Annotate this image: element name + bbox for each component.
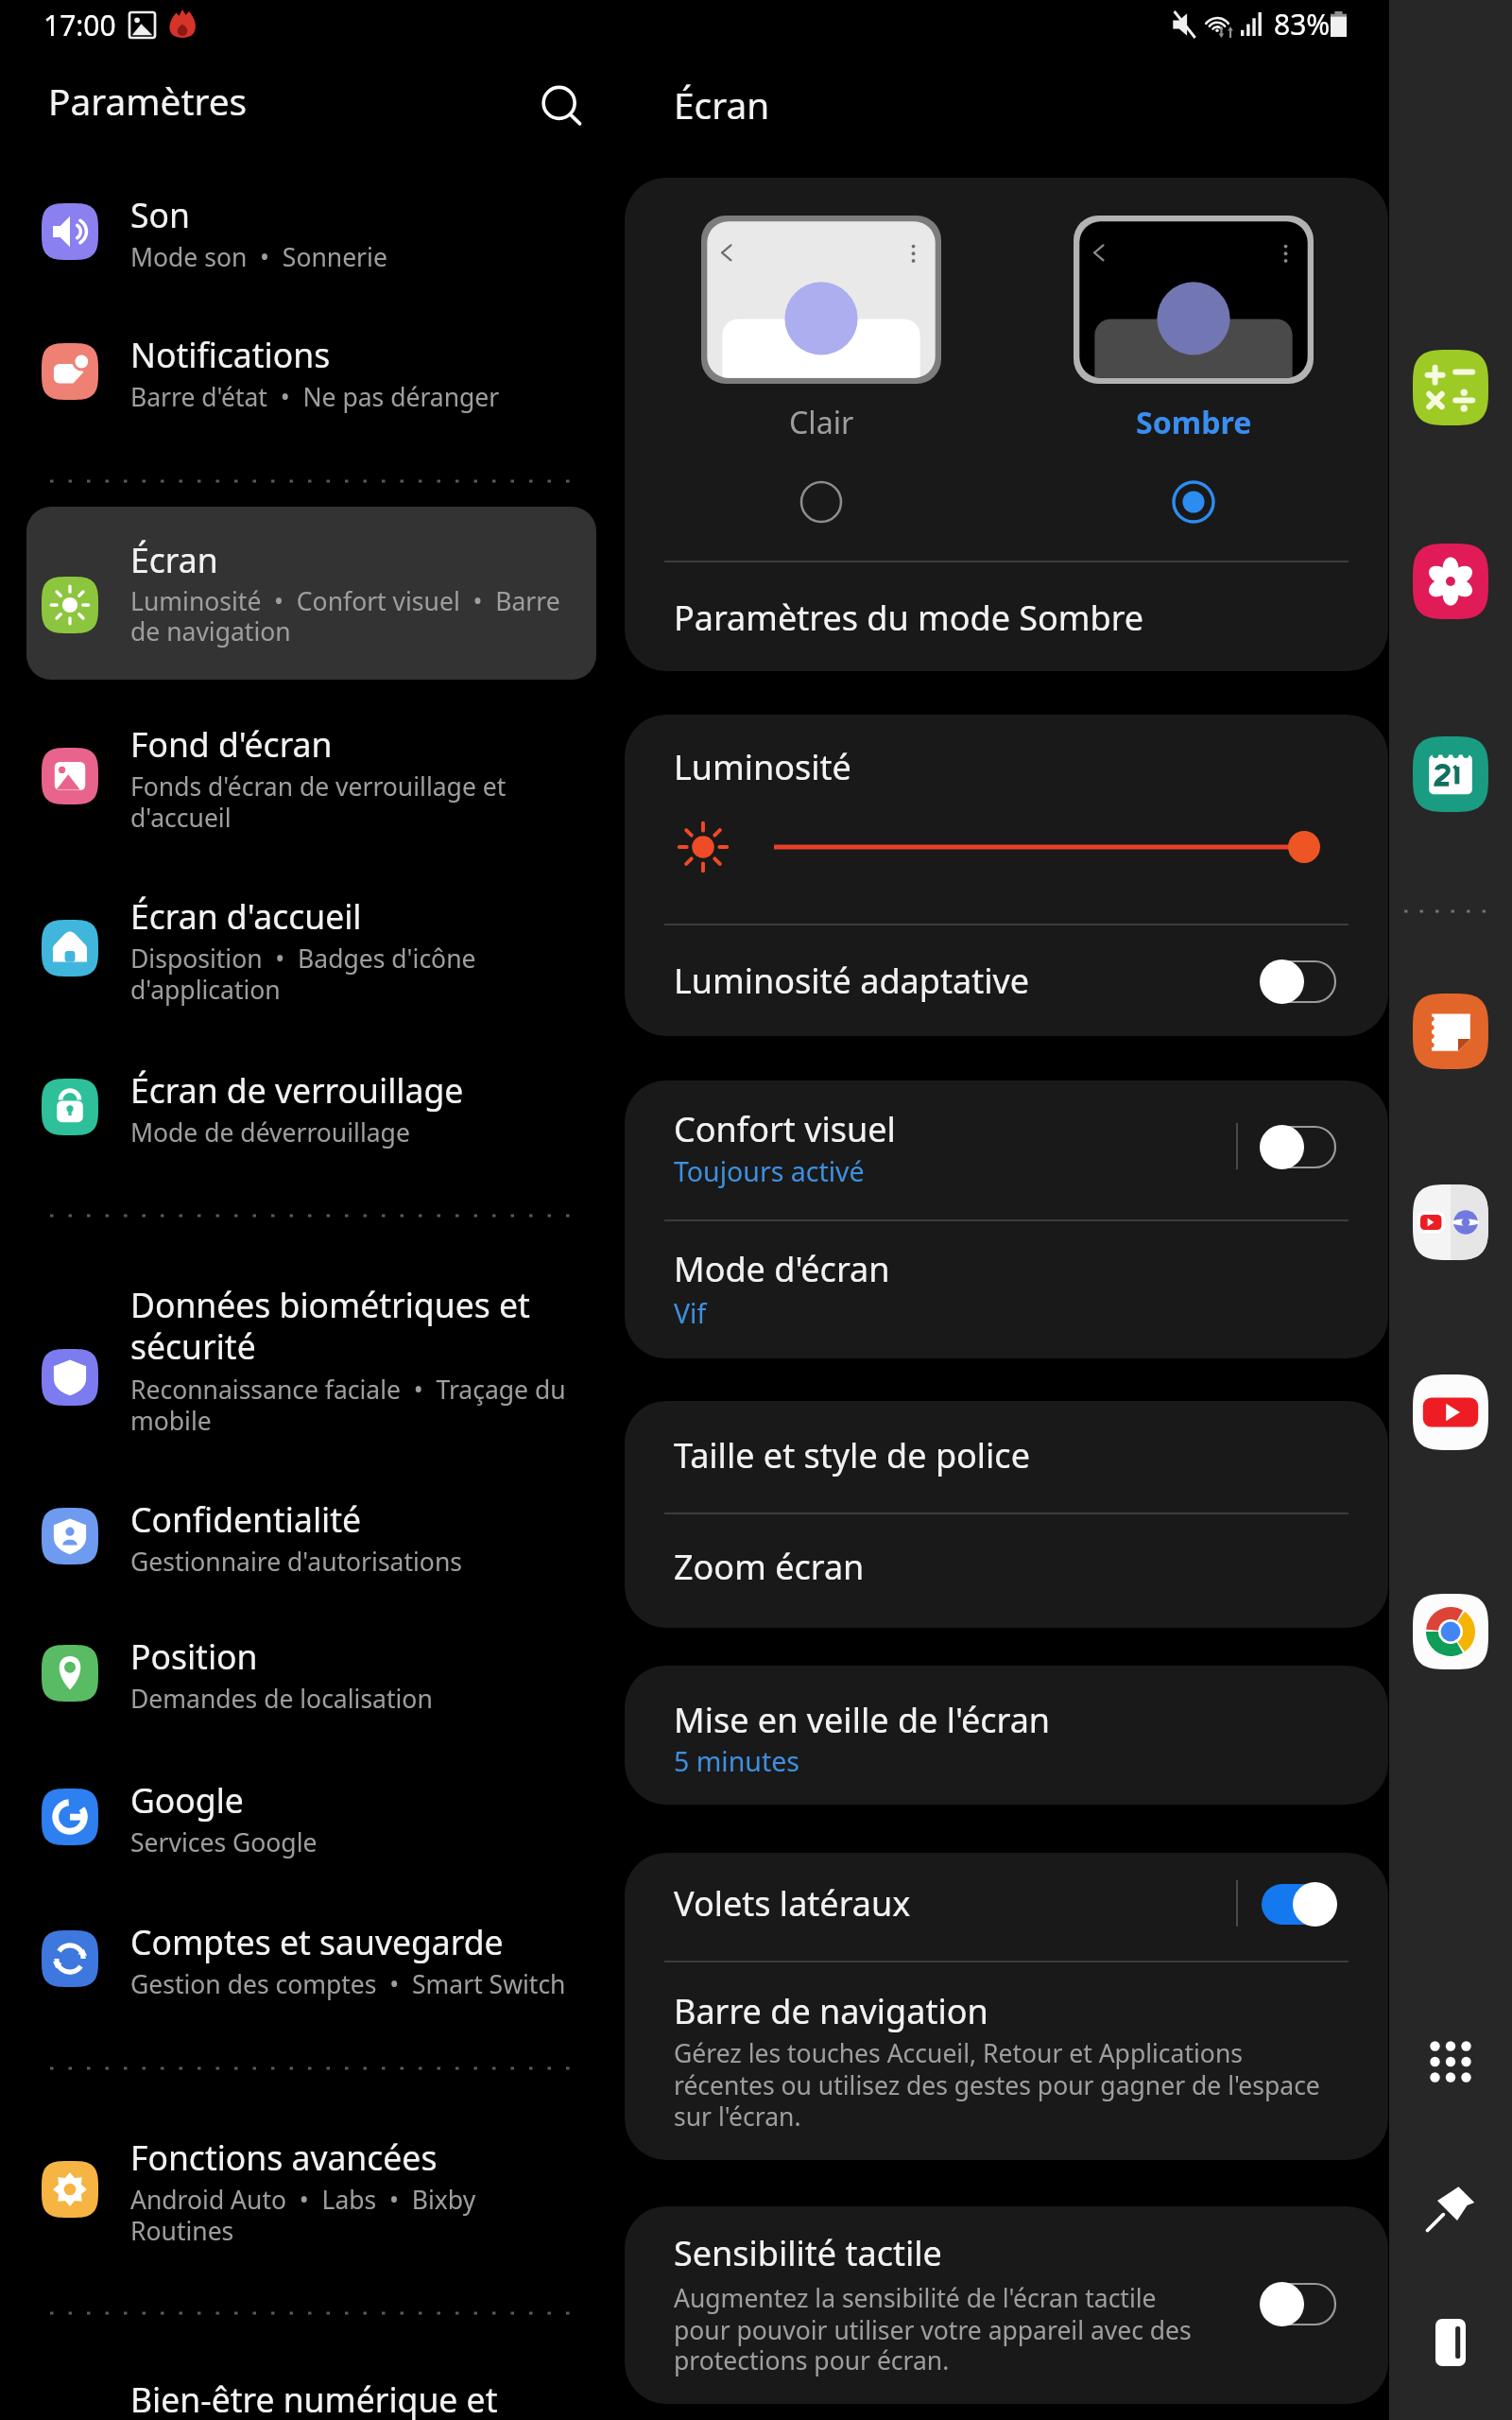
staticText: Taille et style de police	[674, 1437, 1030, 1477]
button[interactable]: Écran d'accueil	[0, 869, 605, 1041]
staticText: Vif	[674, 1299, 707, 1331]
button[interactable]: Volet	[1417, 2309, 1484, 2376]
staticText: Google	[130, 1782, 244, 1822]
staticText: Disposition • Badges d'icône	[130, 943, 476, 974]
staticText: Écran	[674, 85, 770, 129]
staticText: récentes ou utilisez des gestes pour gag…	[674, 2070, 1320, 2102]
button[interactable]: Google	[0, 1753, 605, 1893]
button[interactable]: Application 2	[1413, 544, 1488, 619]
staticText: Sensibilité tactile	[674, 2235, 942, 2274]
staticText: sécurité	[130, 1328, 256, 1368]
button[interactable]: Application 5	[1413, 1184, 1488, 1260]
button[interactable]: Clair	[682, 202, 960, 536]
staticText: Écran	[130, 542, 218, 581]
button[interactable]: Données biométriques et	[0, 1257, 605, 1471]
button[interactable]: Notifications	[0, 307, 605, 448]
staticText: Confort visuel	[674, 1111, 896, 1150]
button[interactable]: Désactiver	[1262, 1884, 1335, 1925]
staticText: Gestion des comptes • Smart Switch	[130, 1969, 566, 1999]
staticText: Barre de navigation	[674, 1993, 988, 2032]
staticText: Barre d'état • Ne pas déranger	[130, 382, 500, 412]
button[interactable]: Luminosité	[774, 826, 1323, 868]
staticText: Paramètres du mode Sombre	[674, 599, 1144, 639]
staticText: Services Google	[130, 1827, 318, 1858]
staticText: Mise en veille de l'écran	[674, 1702, 1051, 1741]
staticText: Confidentialité	[130, 1501, 362, 1541]
staticText: Position	[130, 1638, 258, 1678]
staticText: Bien-être numérique et	[130, 2381, 498, 2420]
staticText: Sombre	[1136, 406, 1252, 441]
staticText: mobile	[130, 1406, 212, 1436]
button[interactable]: Sombre	[1055, 202, 1332, 536]
button[interactable]: Mode d'écran	[625, 1229, 1388, 1358]
button[interactable]: Rechercher	[525, 70, 593, 138]
staticText: Fonctions avancées	[130, 2139, 438, 2179]
button[interactable]: Écran de verrouillage	[0, 1043, 605, 1184]
staticText: sur l'écran.	[674, 2101, 801, 2134]
staticText: Comptes et sauvegarde	[130, 1924, 504, 1963]
staticText: Fonds d'écran de verrouillage et	[130, 771, 507, 802]
staticText: Écran de verrouillage	[130, 1072, 464, 1112]
staticText: Données biométriques et	[130, 1287, 530, 1326]
staticText: 5 minutes	[674, 1747, 799, 1779]
button[interactable]: Confort visuel	[625, 1080, 1388, 1219]
staticText: d'accueil	[130, 803, 232, 833]
button[interactable]: Fond d'écran	[0, 697, 605, 869]
staticText: Son	[130, 197, 190, 236]
button[interactable]: Sensibilité tactile	[625, 2206, 1388, 2404]
button[interactable]: Fonctions avancées	[0, 2110, 605, 2282]
staticText: 17:00	[43, 9, 116, 43]
staticText: Gérez les touches Accueil, Retour et App…	[674, 2038, 1243, 2070]
staticText: Demandes de localisation	[130, 1684, 433, 1714]
staticText: pour pouvoir utiliser votre appareil ave…	[674, 2315, 1192, 2347]
button[interactable]: Activer	[1262, 1127, 1335, 1167]
staticText: Reconnaissance faciale • Traçage du	[130, 1374, 566, 1405]
staticText: Zoom écran	[674, 1548, 865, 1588]
button[interactable]: Application 6	[1413, 1374, 1488, 1450]
staticText: Routines	[130, 2216, 234, 2246]
button[interactable]: Position	[0, 1609, 605, 1750]
button[interactable]: Barre de navigation	[625, 1971, 1388, 2160]
button[interactable]: Activer	[1262, 961, 1335, 1002]
button[interactable]: Application 7	[1413, 1594, 1488, 1669]
button[interactable]: Application 3	[1413, 736, 1488, 812]
button[interactable]: Application 1	[1413, 350, 1488, 425]
staticText: Mode d'écran	[674, 1251, 890, 1290]
button[interactable]: Luminosité adaptative	[625, 936, 1388, 1036]
button[interactable]: Activer	[1262, 2284, 1335, 2325]
staticText: Android Auto • Labs • Bixby	[130, 2185, 476, 2215]
staticText: Luminosité	[674, 749, 851, 788]
button[interactable]: Écran	[26, 507, 596, 680]
staticText: Clair	[789, 406, 854, 441]
button[interactable]: Confidentialité	[0, 1472, 605, 1613]
staticText: Augmentez la sensibilité de l'écran tact…	[674, 2283, 1157, 2315]
button[interactable]: Comptes et sauvegarde	[0, 1894, 605, 2035]
staticText: Paramètres	[48, 81, 248, 125]
staticText: Luminosité adaptative	[674, 962, 1030, 1002]
button[interactable]: Toutes les applications	[1417, 2029, 1484, 2095]
staticText: Volets latéraux	[674, 1885, 911, 1925]
staticText: Fond d'écran	[130, 726, 333, 766]
staticText: d'application	[130, 975, 281, 1005]
staticText: Mode de déverrouillage	[130, 1117, 410, 1148]
button[interactable]: Paramètres du mode Sombre	[625, 572, 1388, 671]
staticText: Luminosité • Confort visuel • Barre de n…	[130, 586, 575, 647]
staticText: Écran d'accueil	[130, 898, 362, 938]
staticText: Notifications	[130, 337, 331, 376]
button[interactable]: Son	[0, 167, 605, 308]
button[interactable]: Volets latéraux	[625, 1853, 1388, 1961]
staticText: Toujours activé	[674, 1157, 865, 1189]
button[interactable]: Zoom écran	[625, 1512, 1388, 1628]
button[interactable]: Application 4	[1413, 994, 1488, 1069]
button[interactable]: Épingler	[1417, 2174, 1484, 2240]
staticText: Mode son • Sonnerie	[130, 242, 387, 272]
button[interactable]: Taille et style de police	[625, 1401, 1388, 1512]
button[interactable]: Mise en veille de l'écran	[625, 1666, 1388, 1805]
staticText: protections pour écran.	[674, 2345, 950, 2377]
staticText: Gestionnaire d'autorisations	[130, 1547, 462, 1577]
staticText: 83%	[1274, 9, 1331, 42]
